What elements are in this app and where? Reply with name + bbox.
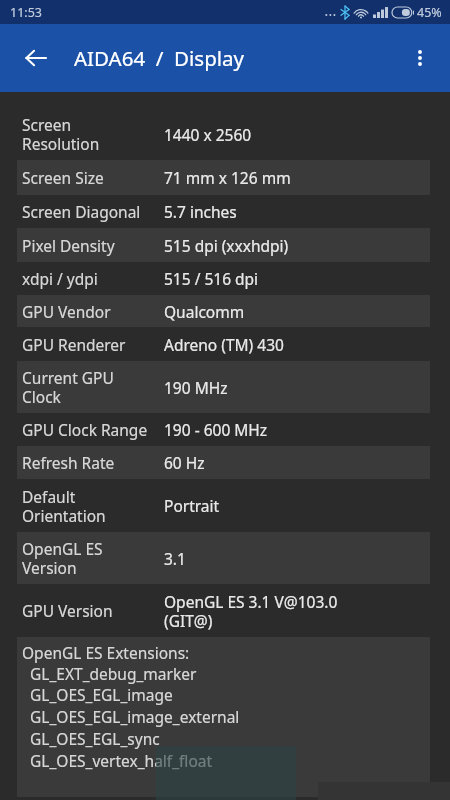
staticText: AIDA64 / Display — [74, 44, 245, 72]
button[interactable]: Screen Diagonal — [0, 195, 450, 228]
button[interactable]: GPU Renderer — [0, 327, 450, 361]
staticText: GPU Vendor — [22, 301, 111, 322]
staticText: 515 / 516 dpi — [164, 268, 259, 289]
staticText: OpenGL ES Extensions: — [22, 642, 190, 663]
staticText: Default Orientation — [22, 486, 106, 526]
button[interactable]: OpenGL ES Extensions: — [0, 637, 450, 797]
staticText: 71 mm x 126 mm — [164, 167, 291, 188]
staticText: 11:53 — [10, 4, 42, 21]
staticText: Screen Resolution — [22, 114, 100, 154]
button[interactable]: GPU Vendor — [0, 295, 450, 327]
staticText: 5.7 inches — [164, 201, 237, 222]
button[interactable]: GPU Clock Range — [0, 413, 450, 446]
button[interactable]: xdpi / ydpi — [0, 262, 450, 295]
staticText: GL_EXT_debug_marker GL_OES_EGL_image GL_… — [22, 663, 240, 772]
staticText: Portrait — [164, 495, 220, 516]
button[interactable]: Screen Resolution — [0, 108, 450, 160]
staticText: 515 dpi (xxxhdpi) — [164, 235, 289, 256]
button[interactable]: Refresh Rate — [0, 446, 450, 479]
staticText: Current GPU Clock — [22, 367, 114, 407]
staticText: Pixel Density — [22, 235, 115, 256]
staticText: 3.1 — [164, 548, 186, 569]
staticText: 45% — [417, 4, 442, 21]
button[interactable]: OpenGL ES Version — [0, 532, 450, 584]
staticText: 190 - 600 MHz — [164, 419, 268, 440]
staticText: GPU Version — [22, 600, 113, 621]
button[interactable]: Pixel Density — [0, 228, 450, 262]
staticText: xdpi / ydpi — [22, 268, 98, 289]
staticText: Refresh Rate — [22, 452, 115, 473]
staticText: 1440 x 2560 — [164, 124, 252, 145]
button[interactable]: Screen Size — [0, 160, 450, 195]
staticText: GPU Renderer — [22, 334, 126, 355]
staticText: 190 MHz — [164, 377, 228, 398]
button[interactable]: Default Orientation — [0, 479, 450, 532]
staticText: Screen Diagonal — [22, 201, 141, 222]
staticText: Screen Size — [22, 167, 104, 188]
staticText: 60 Hz — [164, 452, 205, 473]
staticText: Qualcomm — [164, 301, 245, 322]
button[interactable]: More options — [396, 34, 444, 82]
staticText: OpenGL ES 3.1 V@103.0 (GIT@) — [164, 591, 338, 631]
staticText: Adreno (TM) 430 — [164, 334, 284, 355]
staticText: OpenGL ES Version — [22, 538, 103, 578]
button[interactable]: GPU Version — [0, 584, 450, 637]
button[interactable]: Back — [12, 34, 60, 82]
staticText: GPU Clock Range — [22, 419, 148, 440]
button[interactable]: Current GPU Clock — [0, 361, 450, 413]
